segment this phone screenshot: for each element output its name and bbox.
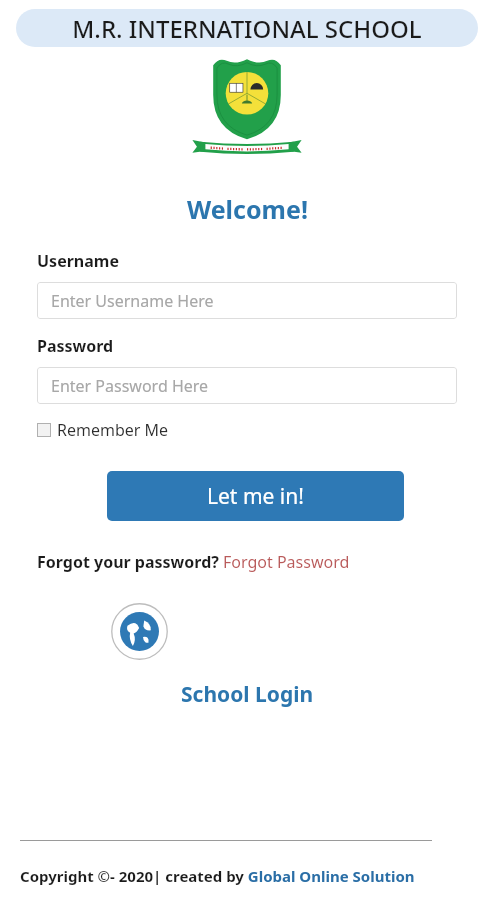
button[interactable]: Enter Username Here (37, 282, 457, 319)
staticText: Password (37, 335, 114, 357)
staticText: Let me in! (207, 482, 304, 511)
staticText: Copyright ©- 2020| created by Global Onl… (20, 866, 415, 886)
staticText: Enter Username Here (51, 290, 214, 312)
staticText: M.R. INTERNATIONAL SCHOOL (72, 12, 422, 45)
staticText: Remember Me (57, 419, 169, 441)
button[interactable]: School Login (110, 602, 169, 661)
staticText: Username (37, 250, 119, 272)
button[interactable]: Forgot your password? Forgot Password (37, 551, 350, 573)
staticText: Enter Password Here (51, 375, 209, 397)
button[interactable]: School Login (181, 680, 314, 709)
button[interactable]: Let me in! (107, 471, 404, 521)
staticText: Welcome! (187, 192, 308, 226)
staticText: School Login (181, 680, 314, 709)
staticText: Forgot your password? Forgot Password (37, 551, 350, 573)
button[interactable]: M.R. INTERNATIONAL SCHOOL (16, 9, 478, 47)
button[interactable]: Remember Me (37, 419, 169, 441)
button[interactable]: Enter Password Here (37, 367, 457, 404)
